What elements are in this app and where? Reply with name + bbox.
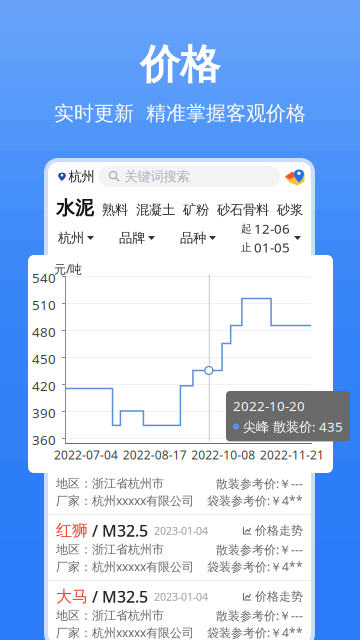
staticText: 品种 <box>180 230 206 246</box>
staticText: 水泥 <box>56 196 94 219</box>
staticText: 地区：浙江省杭州市 <box>56 608 164 623</box>
staticText: 厂家：杭州xxxxx有限公司 <box>56 492 194 508</box>
staticText: 420 <box>32 377 56 395</box>
staticText: 袋装参考价:￥4** <box>207 426 303 442</box>
staticText: / M32.5 <box>88 586 148 607</box>
button[interactable]: 水泥 <box>56 196 94 219</box>
button[interactable]: 地图 <box>284 166 305 186</box>
staticText: 510 <box>32 296 56 314</box>
staticText: 品牌 <box>119 230 145 246</box>
staticText: 红狮 <box>56 521 88 540</box>
staticText: 厂家：杭州xxxxx有限公司 <box>56 558 194 574</box>
staticText: 混凝土 <box>136 202 175 218</box>
button[interactable]: 红狮 <box>48 515 311 581</box>
staticText: 关键词搜索 <box>124 168 189 185</box>
staticText: 厂家：杭州xxxxx有限公司 <box>56 294 194 310</box>
staticText: / P.O42.5 <box>88 454 158 475</box>
staticText: 价格走势 <box>251 589 303 604</box>
staticText: 散装参考价:￥--- <box>216 541 303 557</box>
button[interactable]: 混凝土 <box>136 202 175 218</box>
button[interactable]: 尖峰 <box>48 251 311 317</box>
staticText: 厂家：杭州xxxxx有限公司 <box>56 426 194 442</box>
button[interactable]: 熟料 <box>102 202 128 218</box>
staticText: 砂石骨料 <box>217 202 269 218</box>
staticText: 01-05 <box>254 238 290 256</box>
staticText: 2023-01-04 <box>148 325 208 340</box>
staticText: 尖峰 <box>56 257 88 276</box>
staticText: 袋装参考价:￥4** <box>207 294 303 310</box>
staticText: 杭州 <box>58 230 84 246</box>
staticText: 12-06 <box>254 220 290 237</box>
staticText: 袋装参考价:￥4** <box>207 492 303 508</box>
staticText: 元/吨 <box>54 261 82 277</box>
staticText: 2022-11-21 <box>260 447 324 463</box>
staticText: 砂浆 <box>277 202 303 218</box>
staticText: 厂家：杭州xxxxx有限公司 <box>56 360 194 376</box>
staticText: 尖峰 <box>56 455 88 474</box>
staticText: 价格 <box>140 40 220 89</box>
staticText: 矿粉 <box>183 202 209 218</box>
staticText: 地区：浙江省杭州市 <box>56 410 164 425</box>
staticText: 大马 <box>56 389 88 408</box>
staticText: 杭州 <box>68 168 94 185</box>
staticText: 袋装参考价:￥4** <box>207 624 303 640</box>
button[interactable]: 矿粉 <box>183 202 209 218</box>
button[interactable]: 起 <box>241 220 301 256</box>
button[interactable]: 杭州 <box>57 168 94 185</box>
staticText: 价格走势 <box>251 391 303 406</box>
staticText: 地区：浙江省杭州市 <box>56 344 164 359</box>
staticText: 散装参考价:￥--- <box>216 475 303 491</box>
staticText: 散装参考价:￥--- <box>216 343 303 359</box>
staticText: 散装参考价:￥--- <box>216 409 303 425</box>
button[interactable]: 砂石骨料 <box>217 202 269 218</box>
button[interactable]: 大马 <box>48 383 311 449</box>
staticText: / M32.5 <box>88 388 148 409</box>
staticText: 尖峰 散装价: 435 <box>243 418 343 435</box>
staticText: 地区：浙江省杭州市 <box>56 278 164 293</box>
staticText: 2023-01-04 <box>148 523 208 538</box>
staticText: 480 <box>32 323 56 341</box>
staticText: 价格走势 <box>251 325 303 340</box>
button[interactable]: 尖峰 <box>48 449 311 515</box>
staticText: 袋装参考价:￥4** <box>207 558 303 574</box>
staticText: 价格走势 <box>251 523 303 538</box>
staticText: 价格走势 <box>251 457 303 472</box>
staticText: 地区：浙江省杭州市 <box>56 476 164 491</box>
staticText: 2023-01-04 <box>148 589 208 604</box>
button[interactable]: 品牌 <box>119 230 155 246</box>
staticText: 熟料 <box>102 202 128 218</box>
staticText: 540 <box>32 269 56 287</box>
button[interactable]: 砂浆 <box>277 202 303 218</box>
staticText: 390 <box>32 404 56 422</box>
staticText: / M32.5 <box>88 520 148 541</box>
staticText: 2022-08-17 <box>123 447 187 463</box>
button[interactable]: 杭州 <box>58 230 94 246</box>
staticText: 起 <box>241 222 252 235</box>
staticText: 散装参考价:￥--- <box>216 607 303 623</box>
staticText: 厂家：杭州xxxxx有限公司 <box>56 624 194 640</box>
staticText: 地区：浙江省杭州市 <box>56 542 164 557</box>
staticText: 止 <box>241 241 252 254</box>
staticText: 红狮 <box>56 323 88 342</box>
button[interactable]: 大马 <box>48 581 311 640</box>
staticText: 袋装参考价:￥4** <box>207 360 303 376</box>
staticText: 2022-10-20 <box>233 397 305 415</box>
staticText: 360 <box>32 431 56 449</box>
button[interactable]: 品种 <box>180 230 216 246</box>
staticText: 实时更新 精准掌握客观价格 <box>54 101 306 126</box>
staticText: 450 <box>32 350 56 368</box>
button[interactable]: 红狮 <box>48 317 311 383</box>
staticText: 大马 <box>56 587 88 606</box>
staticText: 2023-01-04 <box>158 457 218 472</box>
staticText: 2023-01-04 <box>148 391 208 406</box>
staticText: 2022-07-04 <box>54 447 118 463</box>
staticText: 2022-10-08 <box>191 447 255 463</box>
